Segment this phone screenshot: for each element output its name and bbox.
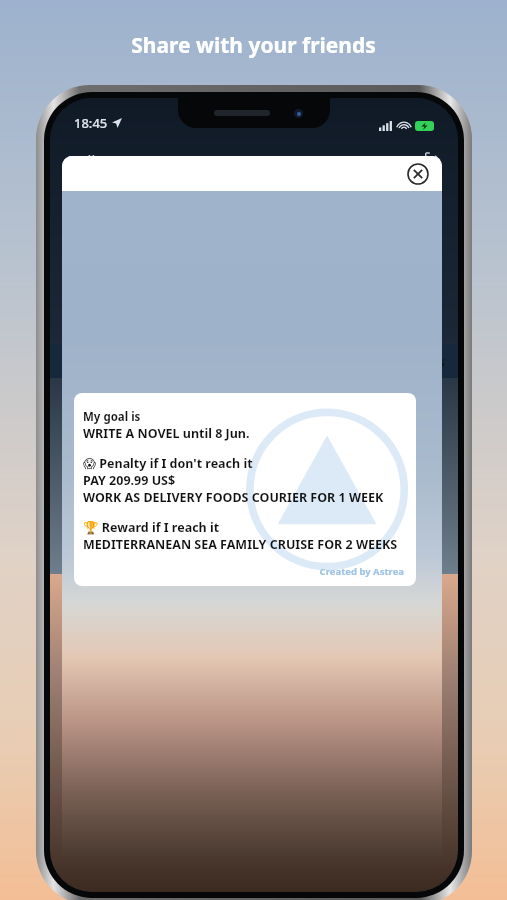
staticText: 🏆 Reward if I reach it xyxy=(83,519,220,536)
staticText: WRITE A NOVEL until 8 Jun. xyxy=(83,425,250,442)
staticText: 18:45 xyxy=(74,114,108,132)
staticText: 😱 Penalty if I don't reach it xyxy=(83,455,253,472)
staticText: Astrea xyxy=(116,150,165,170)
staticText: Created by Astrea xyxy=(83,565,404,578)
other: Log out xyxy=(425,153,440,168)
button[interactable]: Hello, xyxy=(68,150,165,170)
staticText: ess xyxy=(421,351,446,371)
button[interactable]: Close xyxy=(407,163,429,185)
staticText: PAY 209.99 US$ xyxy=(83,472,176,489)
staticText: Log out xyxy=(368,151,419,170)
staticText: WORK AS DELIVERY FOODS COURIER FOR 1 WEE… xyxy=(83,489,384,506)
staticText: My goal is xyxy=(83,409,141,425)
button[interactable]: Log out xyxy=(368,151,440,170)
staticText: MEDITERRANEAN SEA FAMILY CRUISE FOR 2 WE… xyxy=(83,536,398,553)
staticText: Share with your friends xyxy=(0,31,507,60)
staticText: Hello, xyxy=(68,150,109,170)
